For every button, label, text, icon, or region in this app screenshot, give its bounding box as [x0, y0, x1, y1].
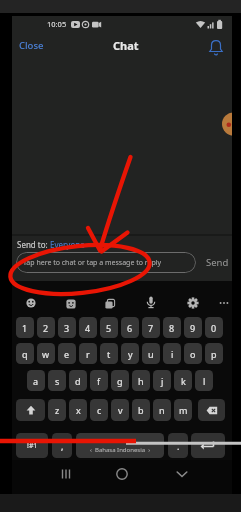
staticText: m: [179, 404, 188, 416]
button[interactable]: [183, 293, 203, 313]
staticText: s: [55, 375, 60, 387]
button[interactable]: n: [153, 399, 171, 421]
staticText: Send: [206, 256, 229, 269]
button[interactable]: y: [121, 343, 139, 364]
button[interactable]: 6: [121, 317, 139, 338]
button[interactable]: 2: [37, 317, 55, 338]
button[interactable]: g: [111, 370, 129, 391]
button[interactable]: [16, 399, 45, 421]
button[interactable]: c: [90, 399, 108, 421]
staticText: 3: [64, 322, 70, 334]
button[interactable]: b: [132, 399, 150, 421]
staticText: 0: [211, 322, 217, 334]
button[interactable]: 0: [205, 317, 223, 338]
staticText: Send to:: [17, 239, 48, 250]
button[interactable]: d: [69, 370, 87, 391]
staticText: p: [211, 348, 217, 360]
staticText: n: [159, 404, 165, 416]
staticText: 1: [22, 322, 28, 334]
button[interactable]: Close: [14, 37, 48, 53]
button[interactable]: t: [100, 343, 118, 364]
button[interactable]: [21, 293, 41, 313]
staticText: 2: [43, 322, 49, 334]
button[interactable]: 7: [142, 317, 160, 338]
staticText: u: [148, 348, 154, 360]
staticText: y: [128, 348, 133, 360]
staticText: e: [64, 348, 70, 360]
button[interactable]: j: [153, 370, 171, 391]
button[interactable]: v: [111, 399, 129, 421]
staticText: 7: [148, 322, 154, 334]
staticText: Tap here to chat or tap a message to rep…: [23, 258, 162, 268]
staticText: 9: [190, 322, 196, 334]
button[interactable]: ‹ Bahasa Indonesia ›: [76, 433, 164, 458]
button[interactable]: x: [69, 399, 87, 421]
button[interactable]: p: [205, 343, 223, 364]
staticText: .: [177, 440, 180, 452]
button[interactable]: k: [174, 370, 192, 391]
button[interactable]: e: [58, 343, 76, 364]
button[interactable]: Tap here to chat or tap a message to rep…: [16, 252, 196, 273]
button[interactable]: m: [174, 399, 192, 421]
button[interactable]: [61, 294, 81, 314]
staticText: a: [33, 375, 39, 387]
staticText: Everyone: [50, 239, 85, 250]
button[interactable]: 1: [16, 317, 34, 338]
button[interactable]: w: [37, 343, 55, 364]
button[interactable]: r: [79, 343, 97, 364]
button[interactable]: [206, 36, 226, 58]
button[interactable]: [141, 293, 161, 313]
staticText: h: [138, 375, 144, 387]
button[interactable]: Everyone: [50, 239, 85, 250]
button[interactable]: 9: [184, 317, 202, 338]
staticText: g: [117, 375, 123, 387]
button[interactable]: [191, 433, 225, 458]
button[interactable]: u: [142, 343, 160, 364]
staticText: ‹ Bahasa Indonesia ›: [90, 446, 151, 454]
staticText: l: [203, 375, 206, 387]
button[interactable]: 5: [100, 317, 118, 338]
button[interactable]: 4: [79, 317, 97, 338]
staticText: Chat: [113, 38, 139, 53]
button[interactable]: 3: [58, 317, 76, 338]
staticText: 5: [106, 322, 112, 334]
staticText: z: [55, 404, 60, 416]
button[interactable]: i: [163, 343, 181, 364]
button[interactable]: q: [16, 343, 34, 364]
staticText: d: [75, 375, 81, 387]
button[interactable]: [198, 399, 225, 421]
button[interactable]: [56, 464, 76, 484]
staticText: b: [138, 404, 144, 416]
staticText: o: [190, 348, 196, 360]
button[interactable]: !#1: [16, 433, 48, 458]
button[interactable]: ,: [52, 433, 72, 458]
staticText: f: [97, 375, 101, 387]
staticText: k: [181, 375, 186, 387]
staticText: i: [171, 348, 174, 360]
button[interactable]: s: [48, 370, 66, 391]
button[interactable]: [172, 464, 192, 484]
staticText: 4: [85, 322, 91, 334]
staticText: 6: [127, 322, 133, 334]
staticText: x: [76, 404, 81, 416]
staticText: Close: [19, 39, 44, 52]
button[interactable]: a: [27, 370, 45, 391]
button[interactable]: o: [184, 343, 202, 364]
staticText: j: [161, 375, 164, 387]
button[interactable]: f: [90, 370, 108, 391]
button[interactable]: z: [48, 399, 66, 421]
staticText: ,: [61, 440, 64, 452]
staticText: c: [97, 404, 102, 416]
button[interactable]: [214, 293, 234, 313]
button[interactable]: [112, 464, 132, 484]
button[interactable]: [100, 294, 120, 314]
button[interactable]: Send: [200, 252, 234, 273]
button[interactable]: l: [195, 370, 213, 391]
staticText: r: [86, 348, 90, 360]
staticText: 10:05: [47, 19, 67, 29]
button[interactable]: 8: [163, 317, 181, 338]
staticText: !#1: [27, 441, 38, 451]
staticText: t: [107, 348, 111, 360]
button[interactable]: h: [132, 370, 150, 391]
button[interactable]: .: [168, 433, 188, 458]
